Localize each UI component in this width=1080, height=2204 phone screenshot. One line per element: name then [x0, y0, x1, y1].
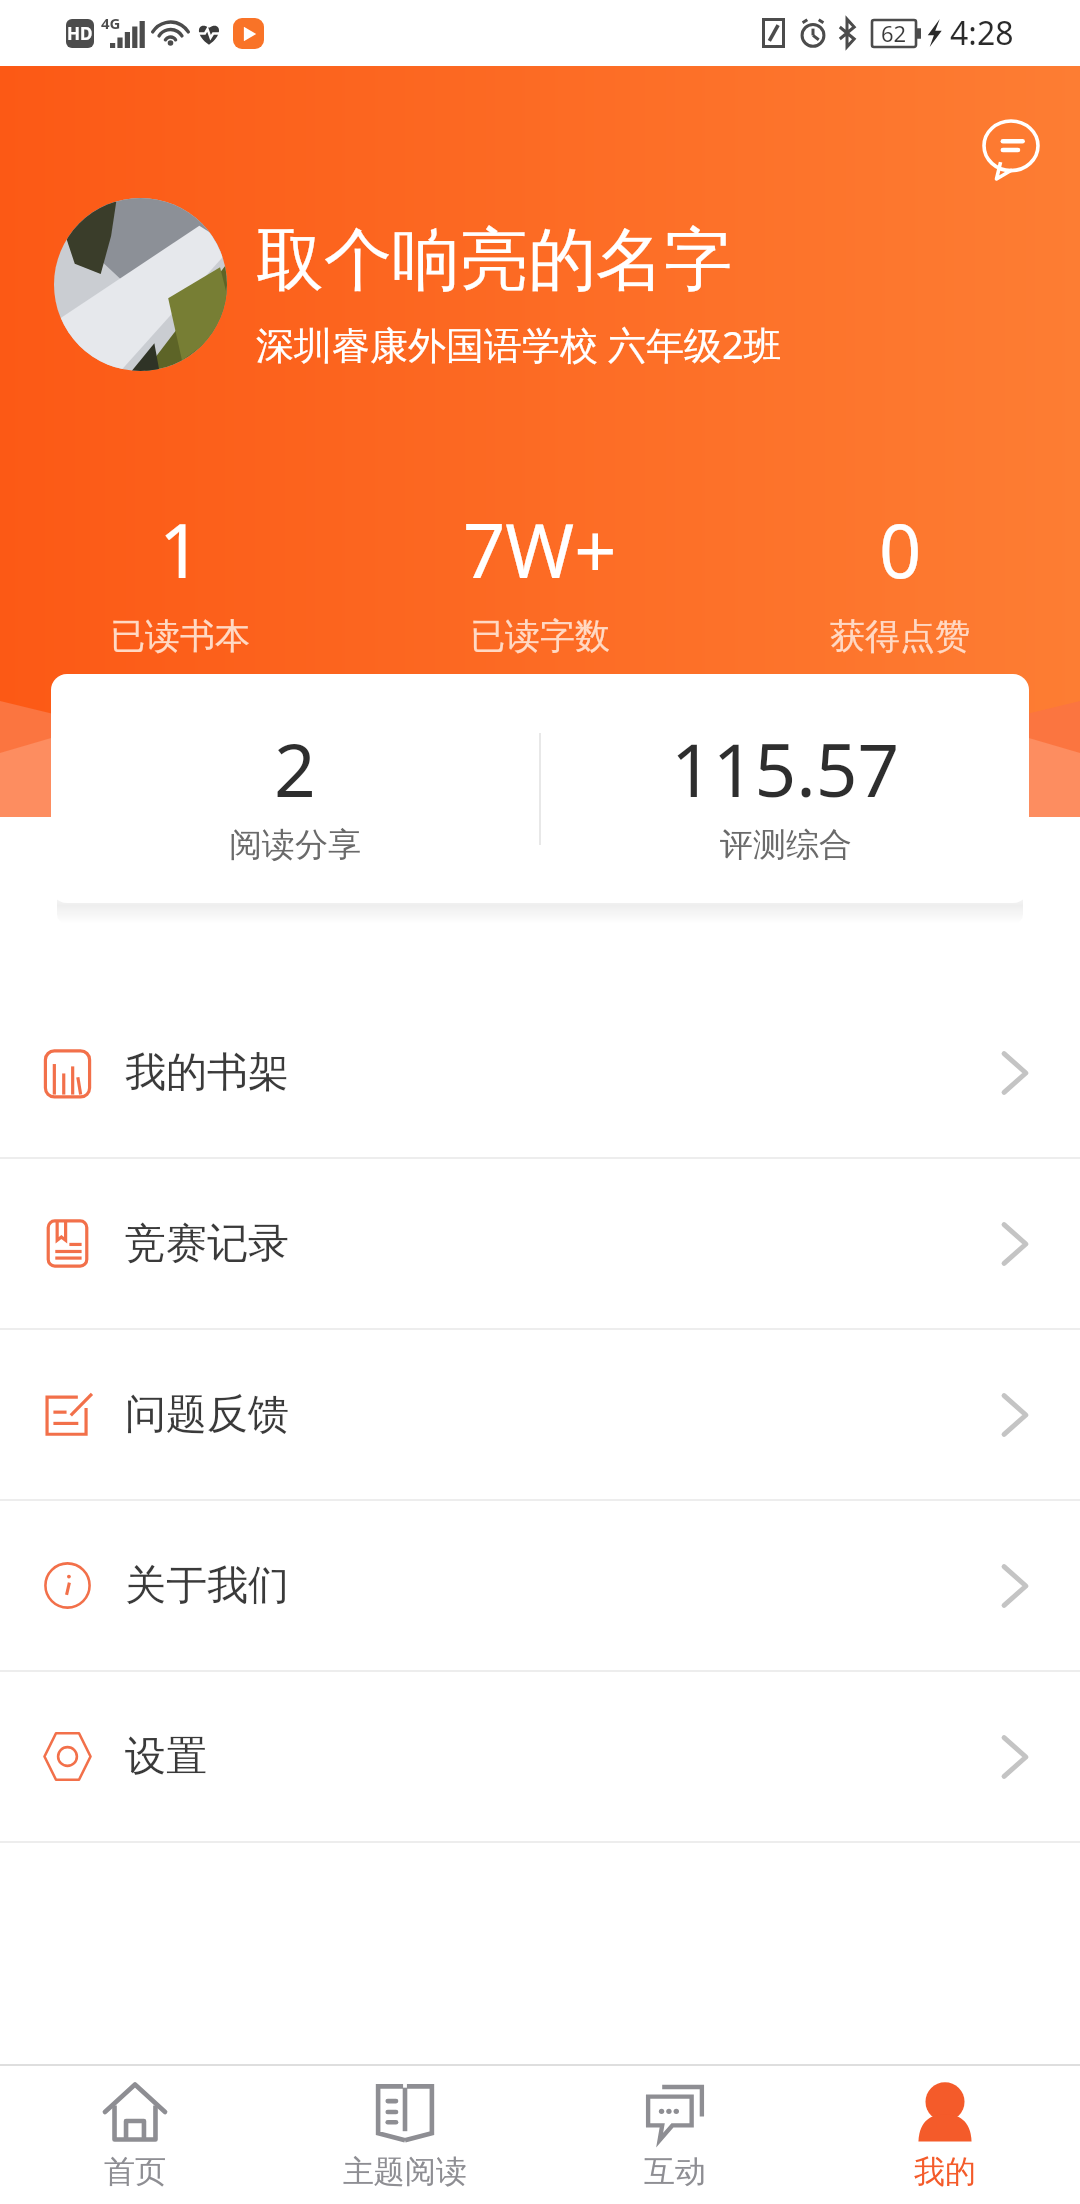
button[interactable]: 主题阅读	[270, 2066, 540, 2204]
button[interactable]: 我的	[810, 2066, 1080, 2204]
button[interactable]: 设置	[0, 1672, 1080, 1841]
staticText: 4G	[101, 13, 121, 33]
staticText: 已读字数	[470, 614, 610, 658]
staticText: 关于我们	[125, 1560, 289, 1612]
staticText: 我的	[914, 2152, 976, 2191]
button[interactable]: 互动	[540, 2066, 810, 2204]
staticText: 竞赛记录	[125, 1218, 289, 1270]
button[interactable]: 竞赛记录	[0, 1159, 1080, 1328]
button[interactable]: 1	[0, 499, 360, 658]
staticText: 设置	[125, 1731, 207, 1783]
staticText: 我的书架	[125, 1047, 289, 1099]
staticText: 115.57	[671, 719, 900, 818]
staticText: 深圳睿康外国语学校 六年级2班	[256, 318, 782, 370]
button[interactable]: Messages	[953, 92, 1069, 208]
staticText: 0	[879, 499, 922, 600]
staticText: 4:28	[950, 11, 1014, 55]
staticText: 互动	[644, 2152, 706, 2191]
staticText: 首页	[104, 2152, 166, 2191]
staticText: 7W+	[463, 499, 617, 600]
staticText: 评测综合	[720, 824, 852, 866]
staticText: HD	[67, 22, 93, 45]
staticText: 阅读分享	[229, 824, 361, 866]
staticText: 62	[881, 18, 907, 48]
button[interactable]: 问题反馈	[0, 1330, 1080, 1499]
button[interactable]: 115.57	[541, 674, 1029, 903]
staticText: 1	[159, 499, 202, 600]
staticText: 取个响亮的名字	[256, 218, 732, 304]
button[interactable]: 2	[51, 674, 539, 903]
staticText: 已读书本	[110, 614, 250, 658]
staticText: 问题反馈	[125, 1389, 289, 1441]
button[interactable]: 首页	[0, 2066, 270, 2204]
button[interactable]: 我的书架	[0, 988, 1080, 1157]
button[interactable]: 7W+	[360, 499, 720, 658]
staticText: 2	[274, 719, 316, 818]
staticText: 主题阅读	[343, 2152, 467, 2191]
button[interactable]: 关于我们	[0, 1501, 1080, 1670]
staticText: 获得点赞	[830, 614, 970, 658]
button[interactable]: 0	[720, 499, 1080, 658]
